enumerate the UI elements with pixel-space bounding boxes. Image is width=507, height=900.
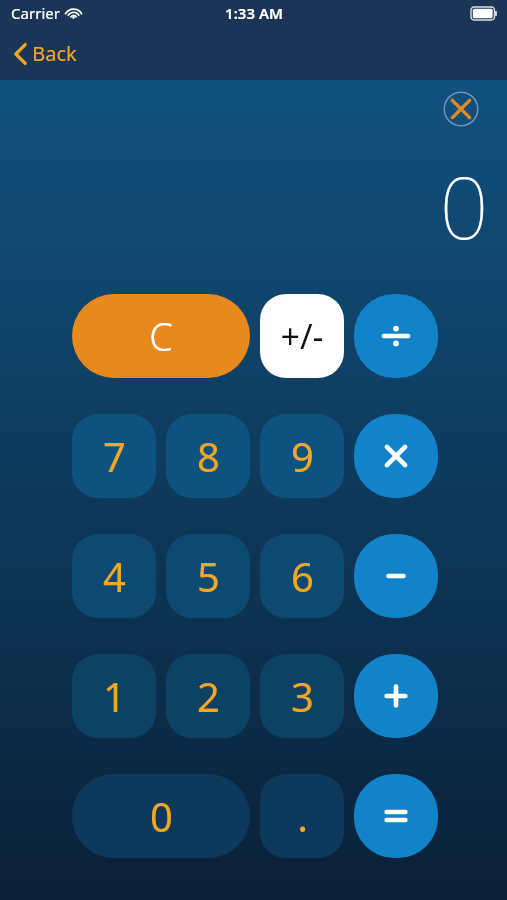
staticText: 3 bbox=[291, 669, 314, 723]
button[interactable]: 7 bbox=[72, 414, 156, 498]
staticText: 2 bbox=[197, 669, 220, 723]
staticText: 1 bbox=[103, 669, 126, 723]
button[interactable]: 5 bbox=[166, 534, 250, 618]
staticText: . bbox=[297, 789, 308, 843]
button[interactable]: 6 bbox=[260, 534, 344, 618]
button[interactable]: +/- bbox=[260, 294, 344, 378]
button[interactable]: Multiply bbox=[354, 414, 438, 498]
button[interactable]: 3 bbox=[260, 654, 344, 738]
button[interactable]: . bbox=[260, 774, 344, 858]
staticText: C bbox=[149, 310, 173, 362]
staticText: 7 bbox=[103, 429, 126, 483]
button[interactable]: 0 bbox=[72, 774, 250, 858]
button[interactable]: Close bbox=[443, 91, 479, 127]
staticText: +/- bbox=[280, 313, 324, 359]
button[interactable]: Add bbox=[354, 654, 438, 738]
button[interactable]: Equals bbox=[354, 774, 438, 858]
button[interactable]: 1 bbox=[72, 654, 156, 738]
staticText: 5 bbox=[197, 549, 220, 603]
button[interactable]: 2 bbox=[166, 654, 250, 738]
button[interactable]: Subtract bbox=[354, 534, 438, 618]
button[interactable]: C bbox=[72, 294, 250, 378]
staticText: 0 bbox=[150, 789, 173, 843]
staticText: 9 bbox=[291, 429, 314, 483]
staticText: Back bbox=[32, 40, 77, 67]
staticText: 6 bbox=[291, 549, 314, 603]
staticText: 1:33 AM bbox=[225, 3, 283, 23]
button[interactable]: 9 bbox=[260, 414, 344, 498]
button[interactable]: 8 bbox=[166, 414, 250, 498]
button[interactable]: Divide bbox=[354, 294, 438, 378]
button[interactable]: Back bbox=[10, 36, 81, 71]
staticText: 4 bbox=[103, 549, 126, 603]
staticText: 0 bbox=[439, 147, 489, 264]
staticText: 8 bbox=[197, 429, 220, 483]
staticText: Carrier bbox=[11, 3, 60, 23]
button[interactable]: 4 bbox=[72, 534, 156, 618]
